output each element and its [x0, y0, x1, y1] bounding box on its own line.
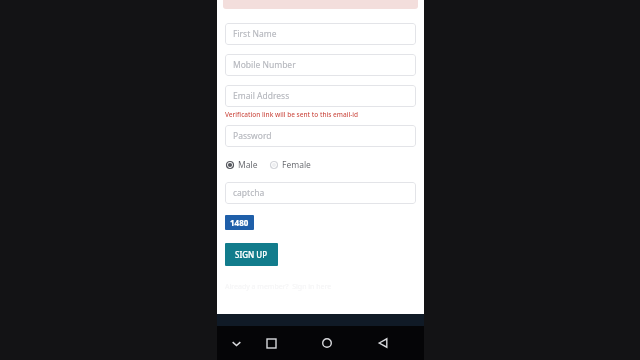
button[interactable]: SIGN UP — [225, 243, 278, 266]
button[interactable]: First Name — [225, 23, 416, 45]
staticText: First Name — [233, 28, 277, 40]
staticText: Password — [233, 130, 272, 142]
button[interactable]: captcha — [225, 182, 416, 204]
button[interactable]: Email Address — [225, 85, 416, 107]
staticText: Female — [282, 159, 311, 171]
button[interactable]: Mobile Number — [225, 54, 416, 76]
staticText: captcha — [233, 187, 265, 199]
staticText: SIGN UP — [235, 249, 268, 260]
button[interactable]: Back — [366, 326, 400, 360]
staticText: 1480 — [230, 217, 249, 228]
button[interactable]: Male — [225, 157, 259, 173]
button[interactable]: 1480 — [225, 215, 254, 230]
staticText: Mobile Number — [233, 59, 296, 71]
staticText: Email Address — [233, 90, 290, 102]
button[interactable]: Password — [225, 125, 416, 147]
button[interactable]: Hide keyboard — [219, 326, 253, 360]
button[interactable]: Home — [310, 326, 344, 360]
staticText: Male — [238, 159, 258, 171]
button[interactable]: Female — [269, 157, 312, 173]
staticText: Verification link will be sent to this e… — [225, 110, 359, 119]
button[interactable]: Recent apps — [254, 326, 288, 360]
